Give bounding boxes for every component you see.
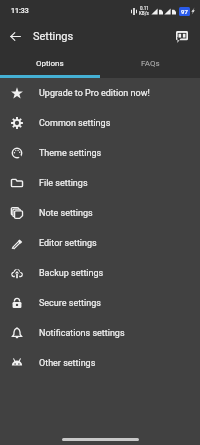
- button[interactable]: Other settings: [0, 348, 200, 378]
- staticText: File settings: [39, 178, 88, 189]
- staticText: KB/s: [139, 11, 149, 16]
- button[interactable]: Theme settings: [0, 138, 200, 168]
- staticText: Secure settings: [39, 298, 101, 309]
- button[interactable]: FAQs: [100, 52, 200, 75]
- button[interactable]: Secure settings: [0, 288, 200, 318]
- button[interactable]: Notifications settings: [0, 318, 200, 348]
- staticText: Backup settings: [39, 268, 104, 279]
- staticText: Theme settings: [39, 148, 102, 159]
- staticText: Common settings: [39, 118, 111, 129]
- staticText: Upgrade to Pro edition now!: [39, 88, 150, 99]
- button[interactable]: Editor settings: [0, 228, 200, 258]
- button[interactable]: Back: [0, 21, 31, 52]
- staticText: Options: [36, 59, 64, 68]
- button[interactable]: Upgrade to Pro edition now!: [0, 78, 200, 108]
- staticText: 11:33: [11, 7, 29, 15]
- staticText: Note settings: [39, 208, 93, 219]
- button[interactable]: File settings: [0, 168, 200, 198]
- staticText: Settings: [33, 30, 74, 43]
- button[interactable]: Backup settings: [0, 258, 200, 288]
- staticText: FAQs: [141, 59, 160, 68]
- staticText: 0.11: [140, 6, 149, 11]
- button[interactable]: Common settings: [0, 108, 200, 138]
- button[interactable]: Feedback: [166, 21, 197, 52]
- staticText: Other settings: [39, 358, 96, 369]
- button[interactable]: Note settings: [0, 198, 200, 228]
- staticText: Editor settings: [39, 238, 97, 249]
- staticText: 97: [181, 8, 188, 15]
- button[interactable]: Options: [0, 52, 100, 75]
- staticText: Notifications settings: [39, 328, 125, 339]
